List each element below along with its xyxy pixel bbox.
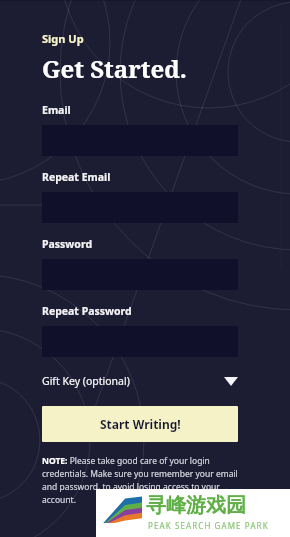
staticText: NOTE: Please take good care of your logi…: [42, 455, 238, 506]
button[interactable]: Start Writing!: [42, 406, 238, 442]
staticText: Email: [42, 103, 71, 117]
staticText: Sign Up: [42, 31, 84, 46]
staticText: Repeat Email: [42, 170, 111, 184]
staticText: Gift Key (optional): [42, 374, 130, 388]
staticText: Repeat Password: [42, 304, 132, 318]
staticText: Start Writing!: [100, 416, 181, 432]
staticText: Get Started.: [42, 52, 187, 85]
staticText: Password: [42, 237, 93, 251]
staticText: PEAK SEARCH GAME PARK: [148, 520, 269, 531]
button[interactable]: Gift Key (optional): [42, 371, 238, 391]
staticText: 寻峰游戏园: [146, 493, 246, 518]
